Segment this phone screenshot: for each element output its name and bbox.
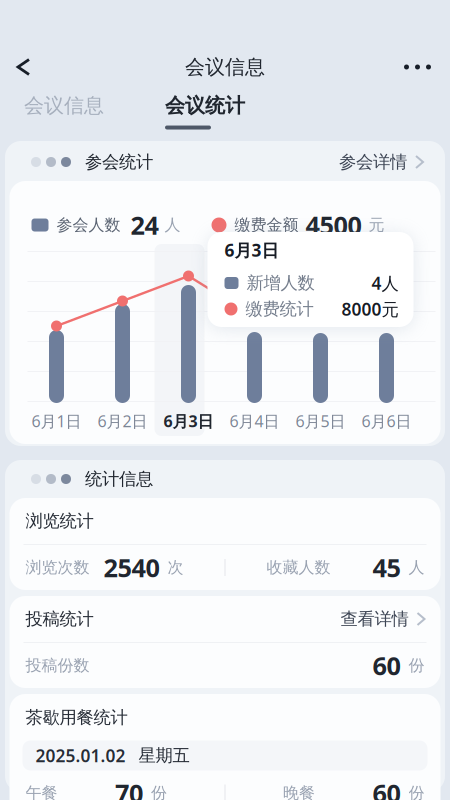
- staticText: 参会详情: [339, 151, 407, 173]
- staticText: 午餐: [25, 783, 57, 800]
- button[interactable]: More options: [382, 44, 450, 89]
- staticText: 次: [167, 558, 183, 577]
- staticText: 会议信息: [24, 93, 104, 118]
- button[interactable]: 会议统计: [140, 93, 270, 129]
- staticText: 8000元: [341, 297, 398, 320]
- staticText: 星期五: [138, 745, 189, 766]
- staticText: 2025.01.02: [35, 744, 125, 767]
- staticText: 会议统计: [165, 93, 245, 118]
- staticText: 6月3日: [224, 238, 278, 261]
- staticText: 会议信息: [185, 55, 265, 79]
- staticText: 缴费金额: [234, 215, 298, 235]
- staticText: 茶歇用餐统计: [25, 707, 127, 728]
- staticText: 份: [408, 656, 424, 675]
- staticText: 4人: [371, 271, 398, 294]
- staticText: 6月1日: [31, 410, 81, 432]
- staticText: 6月6日: [361, 410, 411, 432]
- button[interactable]: 查看详情: [340, 604, 424, 634]
- staticText: 投稿统计: [25, 608, 93, 630]
- staticText: 份: [408, 783, 424, 800]
- staticText: 收藏人数: [266, 558, 330, 577]
- staticText: 2540: [103, 551, 159, 584]
- staticText: 统计信息: [85, 468, 153, 490]
- staticText: 人: [408, 558, 424, 577]
- staticText: 浏览次数: [25, 558, 89, 577]
- staticText: 浏览统计: [25, 510, 93, 532]
- staticText: 晚餐: [283, 783, 315, 800]
- staticText: 缴费统计: [245, 298, 313, 320]
- staticText: 4500: [305, 208, 361, 242]
- staticText: 份: [151, 783, 167, 800]
- staticText: 投稿份数: [25, 656, 89, 675]
- staticText: 45: [372, 551, 400, 584]
- staticText: 元: [368, 215, 384, 235]
- button[interactable]: Back: [0, 44, 51, 89]
- staticText: 6月3日: [163, 410, 213, 432]
- staticText: 参会统计: [85, 151, 153, 173]
- staticText: 人: [164, 215, 180, 235]
- button[interactable]: 会议信息: [0, 93, 140, 129]
- button[interactable]: 参会详情: [339, 147, 423, 177]
- staticText: 70: [115, 776, 143, 800]
- staticText: 6月5日: [295, 410, 345, 432]
- staticText: 参会人数: [56, 215, 120, 235]
- staticText: 6月4日: [229, 410, 279, 432]
- staticText: 60: [372, 776, 400, 800]
- staticText: 24: [130, 208, 158, 242]
- staticText: 6月2日: [97, 410, 147, 432]
- staticText: 新增人数: [246, 272, 314, 294]
- staticText: 60: [372, 649, 400, 682]
- staticText: 查看详情: [340, 608, 408, 630]
